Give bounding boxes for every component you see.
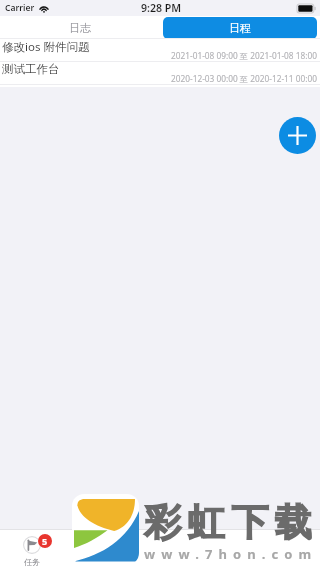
staticText: Carrier (5, 2, 35, 14)
button[interactable]: 测试工作台 (0, 62, 320, 84)
staticText: 修改ios 附件问题 (2, 39, 90, 55)
button[interactable]: 5 (0, 530, 64, 569)
staticText: 9:28 PM (141, 1, 182, 15)
staticText: www.7hon.com (144, 545, 318, 563)
staticText: 2020-12-03 00:00 至 2020-12-11 00:00 (171, 73, 317, 84)
button[interactable]: 修改ios 附件问题 (0, 39, 320, 61)
staticText: 5 (42, 535, 48, 547)
button[interactable]: 日程 (163, 17, 317, 39)
staticText: 测试工作台 (2, 62, 60, 76)
staticText: 彩虹下载 (144, 499, 319, 546)
button[interactable]: Add (279, 117, 316, 154)
staticText: 日程 (229, 21, 251, 35)
button[interactable]: 日志 (9, 16, 151, 39)
staticText: 任务 (24, 557, 40, 567)
staticText: 日志 (69, 21, 91, 35)
staticText: 2021-01-08 09:00 至 2021-01-08 18:00 (171, 50, 317, 61)
